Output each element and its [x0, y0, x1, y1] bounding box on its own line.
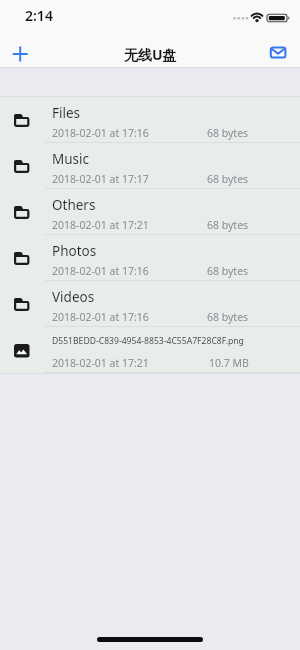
staticText: 10.7 MB [209, 356, 249, 370]
staticText: 68 bytes [207, 310, 249, 324]
button[interactable]: Others [0, 189, 300, 235]
button[interactable] [6, 40, 34, 68]
staticText: 2018-02-01 at 17:21 [52, 356, 149, 370]
staticText: 2018-02-01 at 17:16 [52, 126, 149, 140]
staticText: 2018-02-01 at 17:16 [52, 310, 149, 324]
button[interactable]: Videos [0, 281, 300, 327]
staticText: 2018-02-01 at 17:21 [52, 218, 149, 232]
staticText: 68 bytes [207, 218, 249, 232]
staticText: Photos [52, 242, 97, 260]
button[interactable]: Photos [0, 235, 300, 281]
staticText: 68 bytes [207, 264, 249, 278]
staticText: Music [52, 150, 90, 168]
button[interactable]: D551BEDD-C839-4954-8853-4C55A7F28C8F.png [0, 327, 300, 373]
staticText: 2018-02-01 at 17:16 [52, 264, 149, 278]
staticText: Files [52, 104, 81, 122]
staticText: 2:14 [25, 6, 53, 25]
button[interactable] [266, 40, 294, 68]
staticText: D551BEDD-C839-4954-8853-4C55A7F28C8F.png [52, 335, 244, 347]
staticText: 68 bytes [207, 172, 249, 186]
staticText: 68 bytes [207, 126, 249, 140]
staticText: 无线U盘 [124, 45, 177, 64]
button[interactable]: Music [0, 143, 300, 189]
staticText: Videos [52, 288, 95, 306]
staticText: 2018-02-01 at 17:17 [52, 172, 149, 186]
button[interactable]: Files [0, 97, 300, 143]
staticText: Others [52, 196, 96, 214]
